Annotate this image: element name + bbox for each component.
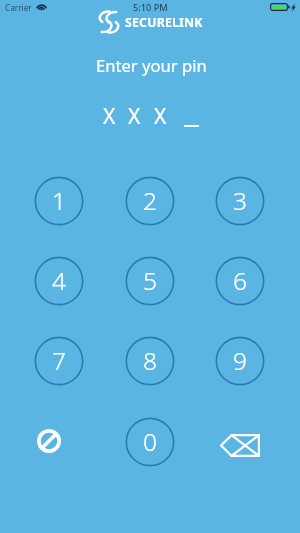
button[interactable]: 7: [34, 336, 84, 386]
button[interactable]: 3: [215, 176, 265, 226]
button[interactable]: 2: [125, 176, 175, 226]
button[interactable]: 4: [34, 256, 84, 306]
staticText: 5:10 PM: [133, 1, 168, 14]
staticText: X: [128, 102, 141, 126]
staticText: 4: [52, 264, 66, 297]
button[interactable]: Backspace: [214, 421, 266, 469]
staticText: 3: [233, 184, 247, 217]
staticText: Enter your pin: [96, 54, 207, 77]
staticText: 7: [52, 344, 66, 377]
button[interactable]: 1: [34, 176, 84, 226]
staticText: 9: [233, 344, 247, 377]
staticText: X: [103, 102, 116, 126]
button[interactable]: 9: [215, 336, 265, 386]
staticText: X: [154, 102, 167, 126]
staticText: 6: [233, 264, 247, 297]
staticText: 8: [143, 344, 157, 377]
button[interactable]: Clear: [24, 416, 74, 466]
staticText: 0: [143, 425, 157, 458]
button[interactable]: 5: [125, 256, 175, 306]
staticText: 2: [143, 184, 157, 217]
staticText: Carrier: [5, 2, 32, 13]
staticText: 1: [52, 184, 66, 217]
staticText: SECURELINK: [125, 14, 203, 31]
button[interactable]: 8: [125, 336, 175, 386]
staticText: 5: [143, 264, 157, 297]
button[interactable]: 6: [215, 256, 265, 306]
button[interactable]: 0: [125, 417, 175, 467]
